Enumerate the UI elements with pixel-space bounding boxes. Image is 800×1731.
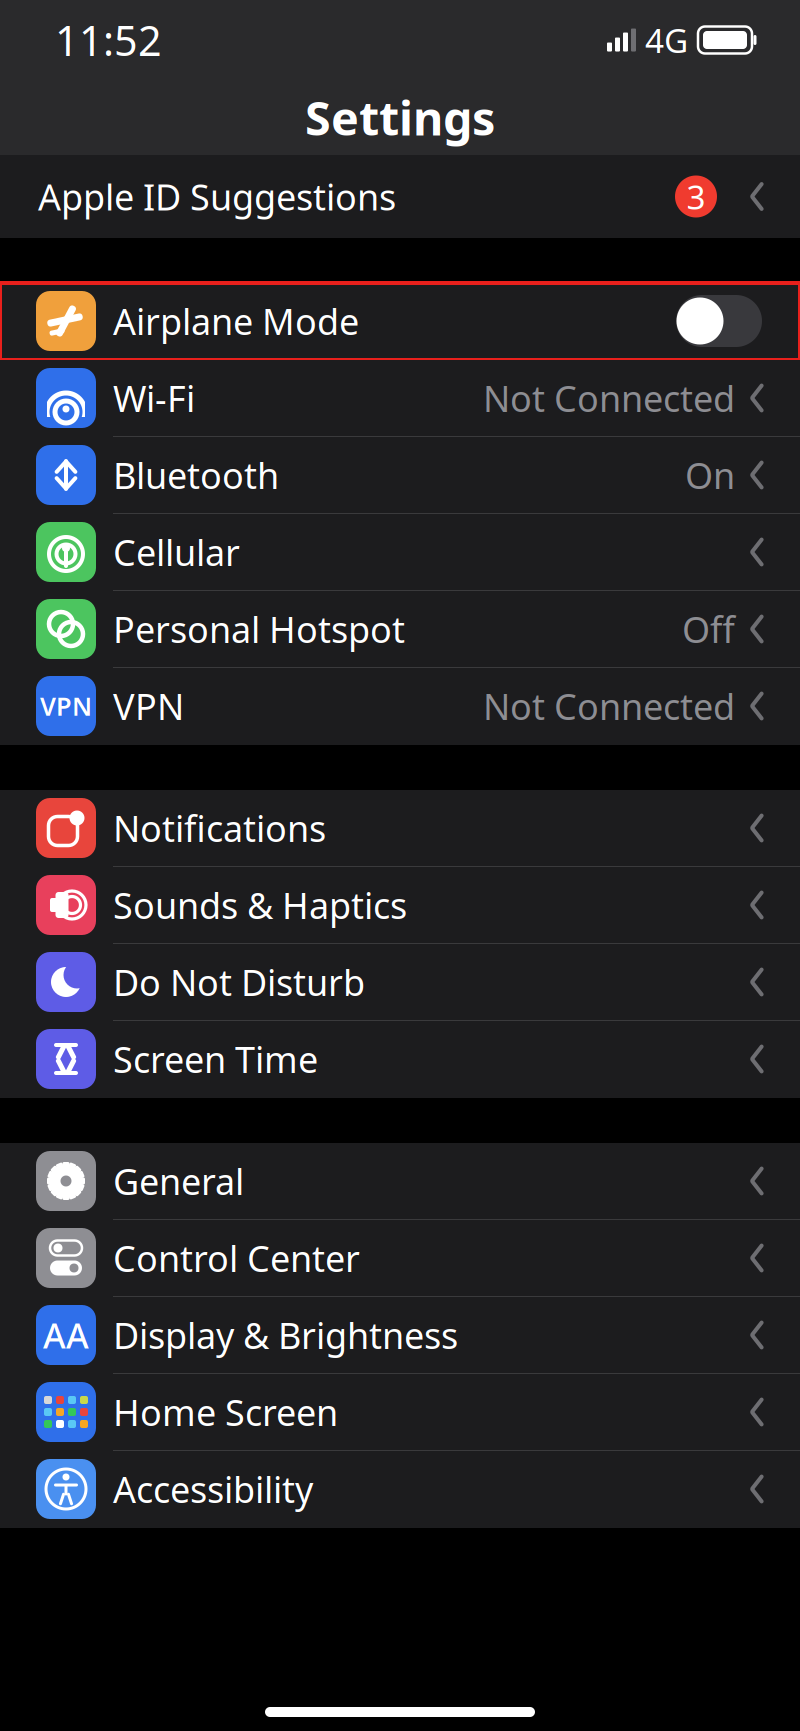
button[interactable]: Cellular <box>0 514 800 591</box>
button[interactable]: VPN <box>0 668 800 745</box>
staticText: Control Center <box>113 1234 360 1282</box>
button[interactable]: Personal Hotspot <box>0 591 800 668</box>
staticText: Screen Time <box>113 1035 318 1083</box>
staticText: Not Connected <box>483 374 735 422</box>
button[interactable]: Accessibility <box>0 1451 800 1528</box>
button[interactable]: Apple ID Suggestions <box>0 155 800 238</box>
staticText: 4G <box>645 18 688 62</box>
staticText: AA <box>43 1312 89 1358</box>
staticText: Bluetooth <box>113 451 279 499</box>
button[interactable]: General <box>0 1143 800 1220</box>
button[interactable]: Wi-Fi <box>0 360 800 437</box>
staticText: General <box>113 1157 244 1205</box>
staticText: Do Not Disturb <box>113 958 365 1006</box>
button[interactable]: Home Screen <box>0 1374 800 1451</box>
button[interactable]: AA <box>0 1297 800 1374</box>
staticText: Accessibility <box>113 1465 313 1513</box>
staticText: Settings <box>305 86 495 148</box>
button[interactable]: Notifications <box>0 790 800 867</box>
staticText: On <box>685 451 735 499</box>
button[interactable]: Control Center <box>0 1220 800 1297</box>
staticText: Wi-Fi <box>113 374 195 422</box>
staticText: VPN <box>40 689 92 723</box>
staticText: 3 <box>686 174 705 219</box>
staticText: Notifications <box>113 804 326 852</box>
staticText: Airplane Mode <box>113 297 359 345</box>
button[interactable]: Sounds & Haptics <box>0 867 800 944</box>
staticText: VPN <box>113 682 184 730</box>
button[interactable]: Bluetooth <box>0 437 800 514</box>
staticText: Home Screen <box>113 1388 338 1436</box>
staticText: Off <box>682 605 735 653</box>
staticText: Personal Hotspot <box>113 605 405 653</box>
button[interactable]: Do Not Disturb <box>0 944 800 1021</box>
staticText: Apple ID Suggestions <box>38 173 396 220</box>
staticText: 11:52 <box>55 13 162 67</box>
staticText: Display & Brightness <box>113 1311 458 1359</box>
staticText: Sounds & Haptics <box>113 881 407 929</box>
button[interactable]: Airplane Mode <box>0 283 800 360</box>
staticText: Cellular <box>113 528 240 576</box>
staticText: Not Connected <box>483 682 735 730</box>
button[interactable]: Screen Time <box>0 1021 800 1098</box>
